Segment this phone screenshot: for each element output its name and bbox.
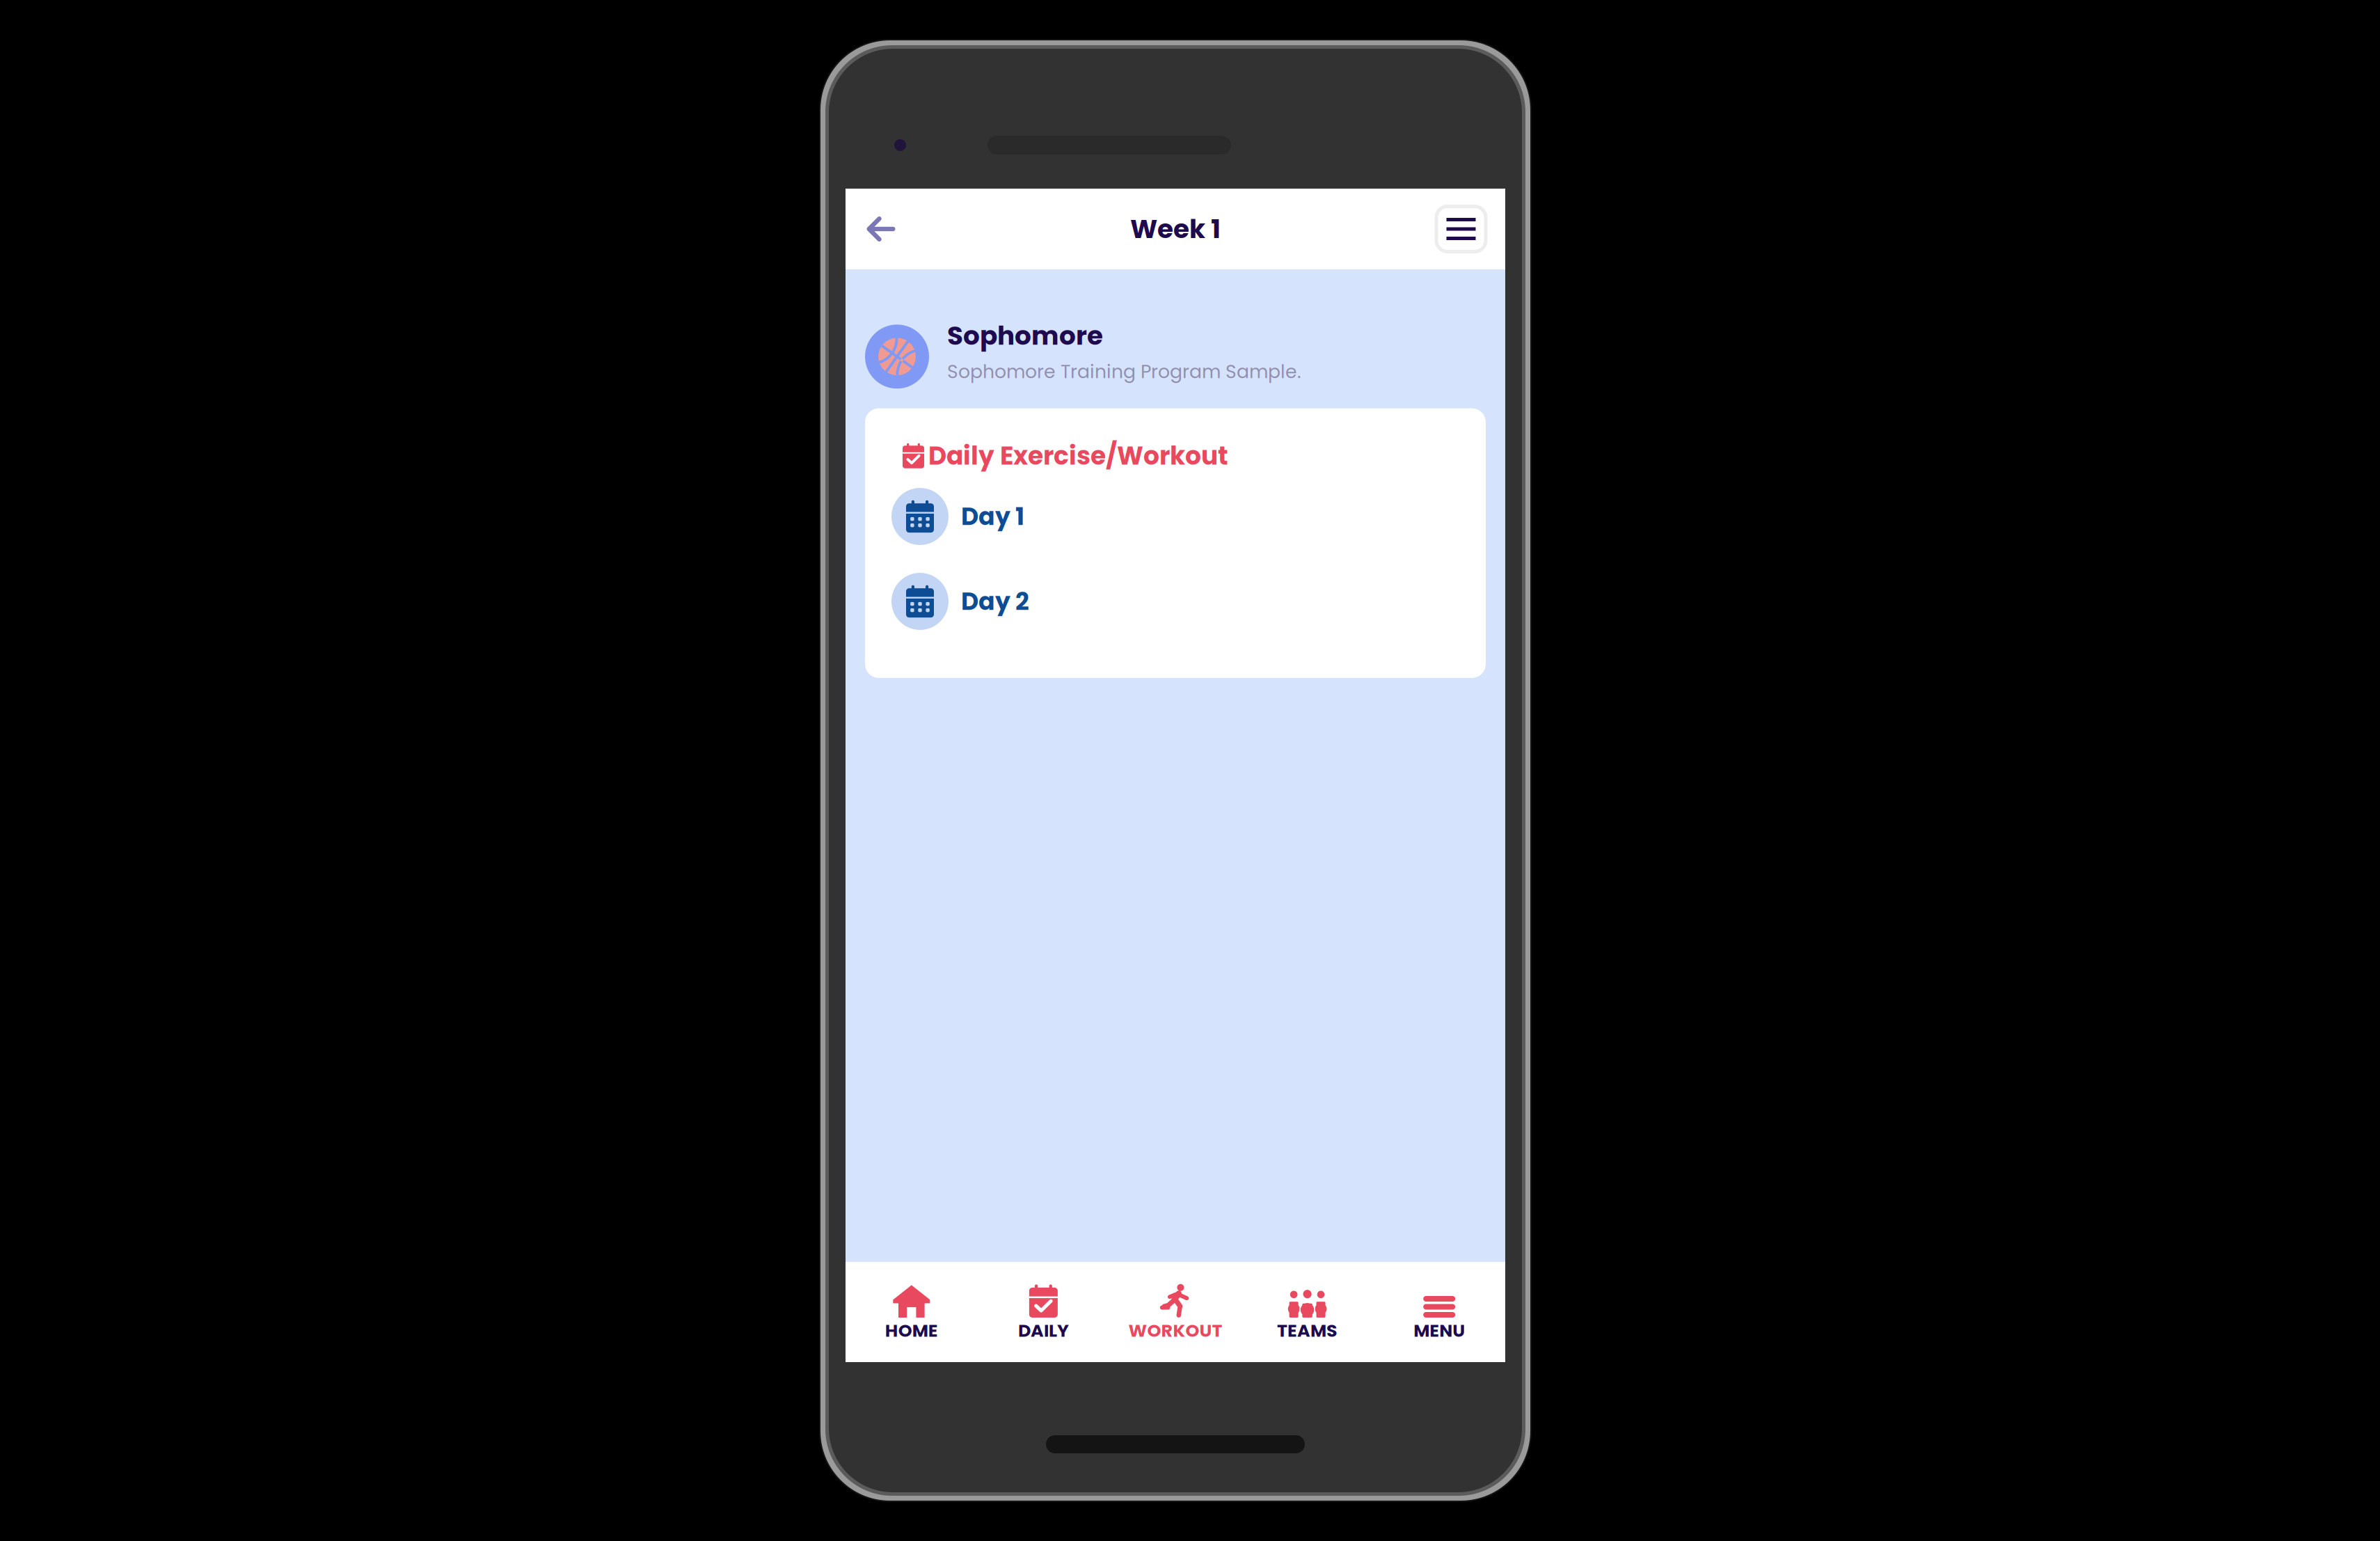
- staticText: Daily Exercise/Workout: [928, 438, 1228, 473]
- button[interactable]: Menu: [1436, 206, 1486, 252]
- button[interactable]: Day 2: [865, 559, 1486, 644]
- button[interactable]: MENU: [1373, 1262, 1505, 1362]
- button[interactable]: TEAMS: [1241, 1262, 1373, 1362]
- button[interactable]: Back: [855, 203, 907, 255]
- staticText: DAILY: [1018, 1318, 1069, 1343]
- staticText: Day 1: [961, 500, 1024, 533]
- button[interactable]: HOME: [846, 1262, 977, 1362]
- staticText: MENU: [1414, 1318, 1465, 1343]
- staticText: Day 2: [961, 584, 1029, 618]
- button[interactable]: DAILY: [977, 1262, 1109, 1362]
- button[interactable]: WORKOUT: [1109, 1262, 1241, 1362]
- staticText: HOME: [885, 1318, 938, 1343]
- staticText: WORKOUT: [1128, 1318, 1222, 1343]
- staticText: Week 1: [1130, 211, 1221, 247]
- staticText: TEAMS: [1277, 1318, 1338, 1343]
- button[interactable]: Day 1: [865, 474, 1486, 559]
- staticText: Sophomore Training Program Sample.: [947, 359, 1301, 385]
- staticText: Sophomore: [947, 317, 1103, 354]
